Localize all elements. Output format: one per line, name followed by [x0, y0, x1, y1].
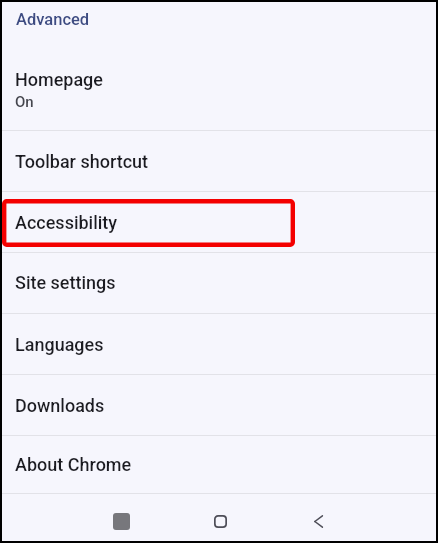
staticText: Accessibility [15, 212, 118, 233]
button[interactable]: Downloads [2, 375, 436, 436]
staticText: Downloads [15, 395, 105, 416]
staticText: Languages [15, 334, 104, 355]
staticText: On [15, 93, 34, 111]
button[interactable]: Back [295, 498, 341, 543]
staticText: Advanced [16, 10, 90, 29]
button[interactable]: Site settings [2, 253, 436, 314]
button[interactable]: About Chrome [2, 436, 436, 494]
staticText: Site settings [15, 272, 116, 293]
button[interactable]: Languages [2, 314, 436, 375]
staticText: About Chrome [15, 454, 132, 475]
button[interactable]: Recent apps [98, 498, 144, 543]
button[interactable]: Accessibility [2, 192, 436, 253]
button[interactable]: Homepage [2, 48, 436, 131]
staticText: Homepage [15, 69, 103, 90]
staticText: Toolbar shortcut [15, 151, 149, 172]
button[interactable]: Toolbar shortcut [2, 131, 436, 192]
button[interactable]: Home [197, 498, 243, 543]
